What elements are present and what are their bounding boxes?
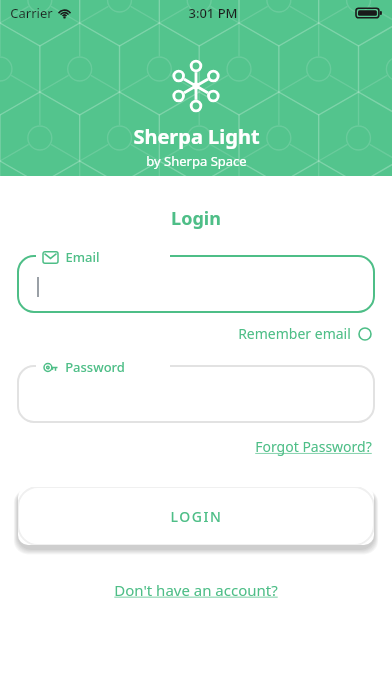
button[interactable]: LOGIN [18, 487, 374, 545]
staticText: Password [65, 358, 125, 376]
staticText: Email [65, 248, 100, 266]
button[interactable] [18, 366, 374, 422]
staticText: LOGIN [170, 507, 223, 526]
staticText: Remember email [238, 324, 351, 343]
staticText: Sherpa Light [133, 123, 260, 150]
button[interactable] [18, 256, 374, 312]
button[interactable]: Forgot Password? [253, 434, 374, 459]
staticText: Login [0, 206, 392, 231]
staticText: Carrier [10, 4, 53, 22]
staticText: 3:01 PM [188, 4, 238, 22]
button[interactable]: Remember email [236, 320, 374, 347]
staticText: Forgot Password? [255, 437, 372, 456]
staticText: by Sherpa Space [146, 152, 247, 170]
staticText: Don't have an account? [114, 580, 278, 600]
button[interactable]: Don't have an account? [110, 577, 282, 603]
